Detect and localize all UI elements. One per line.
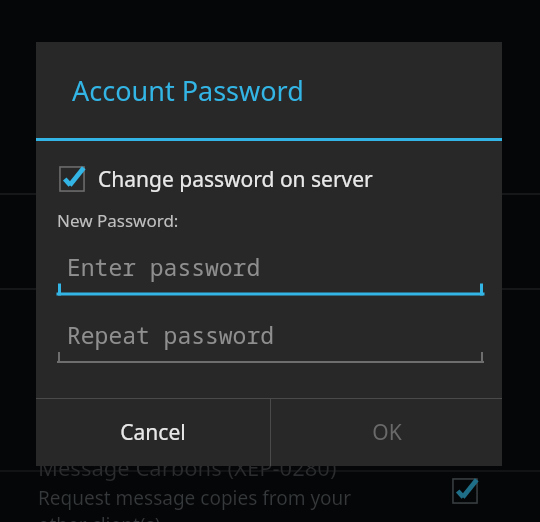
- staticText: Repeat password: [67, 319, 275, 350]
- staticText: Account Password: [72, 72, 304, 109]
- staticText: OK: [372, 418, 402, 447]
- button[interactable]: Change password on server: [58, 157, 373, 201]
- button[interactable]: Cancel: [36, 399, 270, 466]
- staticText: other client(s): [38, 512, 161, 522]
- staticText: Cancel: [120, 418, 186, 447]
- button[interactable]: OK: [271, 399, 502, 466]
- button[interactable]: Repeat password: [58, 316, 483, 364]
- staticText: Request message copies from your: [38, 485, 352, 511]
- staticText: New Password:: [57, 209, 179, 232]
- staticText: Enter password: [67, 251, 261, 282]
- staticText: Message Carbons (XEP-0280): [38, 452, 337, 482]
- button[interactable]: Enter password: [58, 248, 483, 296]
- staticText: Change password on server: [98, 165, 373, 194]
